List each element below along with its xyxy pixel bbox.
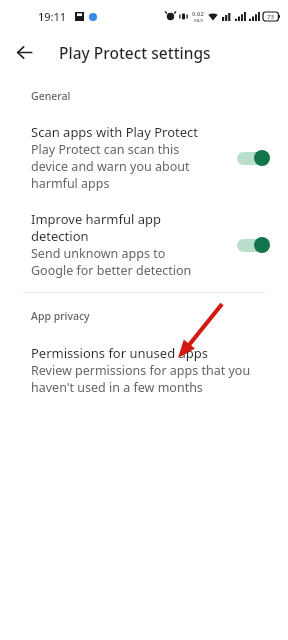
button[interactable]: Back: [8, 36, 40, 68]
staticText: 73: [267, 13, 274, 21]
staticText: 19:11: [38, 9, 67, 24]
staticText: Permissions for unused apps: [31, 344, 209, 362]
button[interactable]: Toggle: [236, 234, 270, 256]
staticText: 0.62: [192, 10, 204, 18]
staticText: Review permissions for apps that you hav…: [31, 362, 251, 396]
button[interactable]: Permissions for unused apps: [0, 344, 288, 396]
button[interactable]: Scan apps with Play Protect: [0, 123, 288, 192]
staticText: Improve harmful app detection: [31, 210, 161, 245]
staticText: KB/S: [194, 18, 203, 23]
staticText: Send unknown apps to Google for better d…: [31, 245, 192, 279]
button[interactable]: Improve harmful app detection: [0, 210, 288, 279]
staticText: Play Protect settings: [59, 42, 211, 63]
button[interactable]: Toggle: [236, 147, 270, 169]
staticText: Scan apps with Play Protect: [31, 123, 198, 141]
staticText: General: [31, 89, 71, 103]
staticText: App privacy: [31, 309, 90, 323]
staticText: Play Protect can scan this device and wa…: [31, 141, 190, 192]
